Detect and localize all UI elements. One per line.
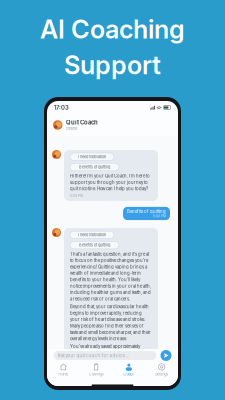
staticText: You've already saved approximately <box>70 344 140 349</box>
staticText: Ask your quit coach for advice... <box>57 353 128 358</box>
button[interactable]: Coach <box>112 363 145 376</box>
button[interactable]: Benefits of quitting <box>70 163 119 171</box>
staticText: AI Coaching <box>40 14 185 45</box>
staticText: Cravings <box>89 372 104 376</box>
staticText: Coach <box>123 372 134 376</box>
staticText: I need motivation <box>78 154 106 159</box>
staticText: Benefits of quitting <box>127 209 166 214</box>
staticText: Beyond that, your cardiovascular health … <box>70 304 151 341</box>
staticText: Benefits of quitting <box>79 243 110 247</box>
staticText: Online <box>66 126 77 131</box>
button[interactable]: Benefits of quitting <box>70 241 119 249</box>
staticText: That's a fantastic question, and it's gr… <box>70 251 151 301</box>
button[interactable]: Settings <box>145 363 178 376</box>
staticText: 5:03 PM <box>70 194 83 198</box>
staticText: 17:03 <box>54 104 69 111</box>
staticText: Quit Coach <box>66 119 98 126</box>
staticText: Home <box>58 372 68 376</box>
button[interactable]: I need motivation <box>70 153 114 161</box>
staticText: Benefits of quitting <box>79 165 110 169</box>
staticText: Settings <box>155 372 168 376</box>
button[interactable]: Cravings <box>80 363 113 376</box>
button[interactable]: Ask your quit coach for advice... <box>53 351 156 360</box>
staticText: Hi there! I'm your Quit Coach. I'm here … <box>70 173 150 191</box>
staticText: 5:03 PM <box>153 214 166 218</box>
staticText: I need motivation <box>78 233 106 237</box>
button[interactable]: Home <box>47 363 80 376</box>
staticText: Support <box>64 50 161 80</box>
button[interactable]: I need motivation <box>70 231 114 239</box>
button[interactable]: Send <box>160 350 171 361</box>
